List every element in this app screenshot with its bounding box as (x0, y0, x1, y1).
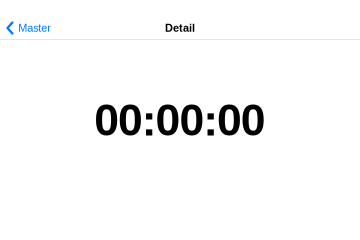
staticText: Master (18, 22, 51, 34)
staticText: 00:00:00 (94, 95, 266, 145)
button[interactable]: Master (0, 16, 57, 40)
staticText: Detail (165, 22, 195, 34)
